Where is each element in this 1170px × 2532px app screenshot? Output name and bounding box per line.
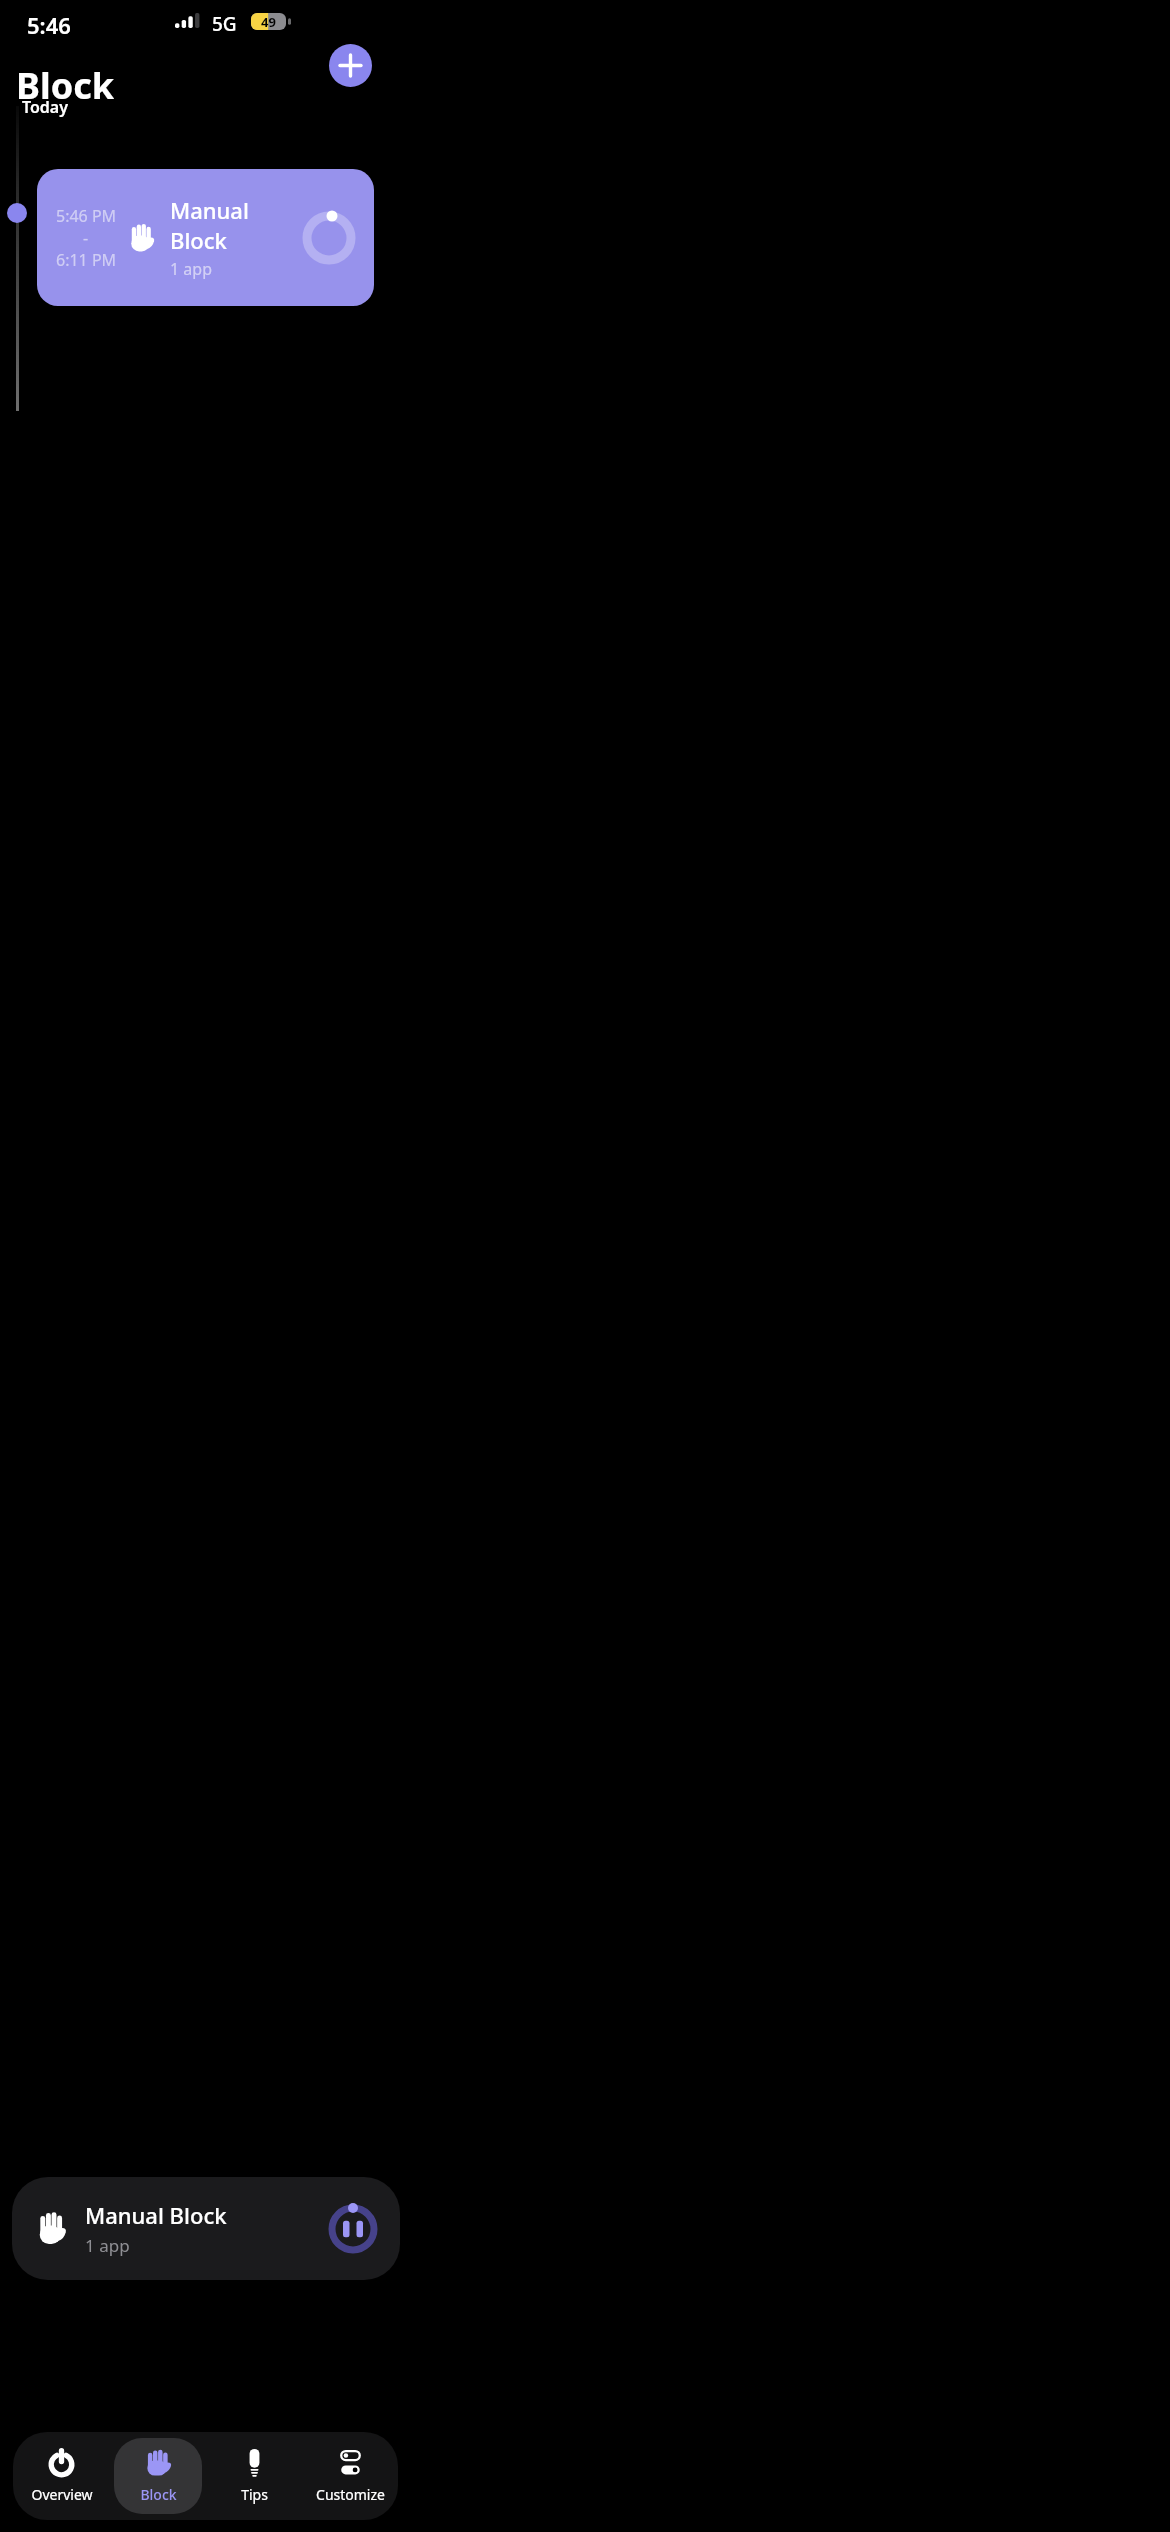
staticText: 1 app	[170, 258, 212, 280]
button[interactable]: Pause	[328, 2204, 378, 2254]
staticText: Manual Block	[85, 2200, 227, 2230]
staticText: 5:46 PM	[56, 205, 117, 227]
button[interactable]: Customize	[306, 2438, 394, 2514]
staticText: Customize	[316, 2485, 385, 2504]
button[interactable]: Overview	[17, 2438, 106, 2514]
button[interactable]: Add block	[329, 44, 372, 87]
staticText: -	[83, 227, 89, 249]
staticText: Tips	[241, 2485, 268, 2504]
staticText: Block	[140, 2485, 177, 2504]
staticText: 5:46	[27, 10, 71, 40]
staticText: 1 app	[85, 2234, 130, 2257]
staticText: Today	[22, 96, 69, 118]
button[interactable]: Block	[114, 2438, 202, 2514]
staticText: Overview	[31, 2485, 93, 2504]
staticText: Block	[16, 61, 115, 110]
button[interactable]: Tips	[210, 2438, 298, 2514]
staticText: 5G	[212, 11, 237, 37]
staticText: 49	[261, 13, 276, 31]
staticText: Manual Block	[170, 195, 302, 255]
button[interactable]: Manual Block	[12, 2177, 400, 2280]
button[interactable]: 5:46 PM	[37, 169, 374, 306]
staticText: 6:11 PM	[56, 249, 117, 271]
